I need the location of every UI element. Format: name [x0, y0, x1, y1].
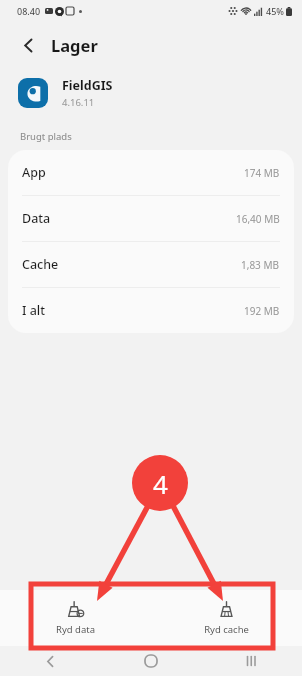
staticText: Cache [22, 256, 59, 273]
button[interactable]: Cache [8, 242, 294, 288]
staticText: 192 MB [244, 304, 280, 318]
staticText: I alt [22, 302, 45, 319]
staticText: Data [22, 210, 51, 227]
button[interactable]: Recent apps [201, 646, 302, 676]
button[interactable]: Home [100, 646, 201, 676]
staticText: Lager [51, 34, 98, 56]
staticText: 1,83 MB [241, 258, 280, 272]
staticText: 45% [266, 5, 284, 17]
button[interactable]: Ryd cache [151, 594, 302, 643]
staticText: 4 [153, 466, 168, 501]
staticText: App [22, 164, 46, 181]
button[interactable]: Ryd data [0, 594, 151, 643]
button[interactable]: I alt [8, 288, 294, 333]
staticText: Ryd data [56, 623, 95, 636]
staticText: 08.40 [17, 5, 41, 17]
button[interactable]: App [8, 150, 294, 196]
staticText: Brugt plads [20, 130, 72, 143]
staticText: 16,40 MB [236, 212, 280, 226]
button[interactable]: Back [12, 29, 44, 61]
button[interactable]: Back [0, 646, 100, 676]
staticText: 174 MB [244, 166, 280, 180]
staticText: 4.16.11 [62, 96, 95, 109]
staticText: Ryd cache [204, 623, 249, 636]
staticText: FieldGIS [62, 77, 113, 94]
button[interactable]: Data [8, 196, 294, 242]
